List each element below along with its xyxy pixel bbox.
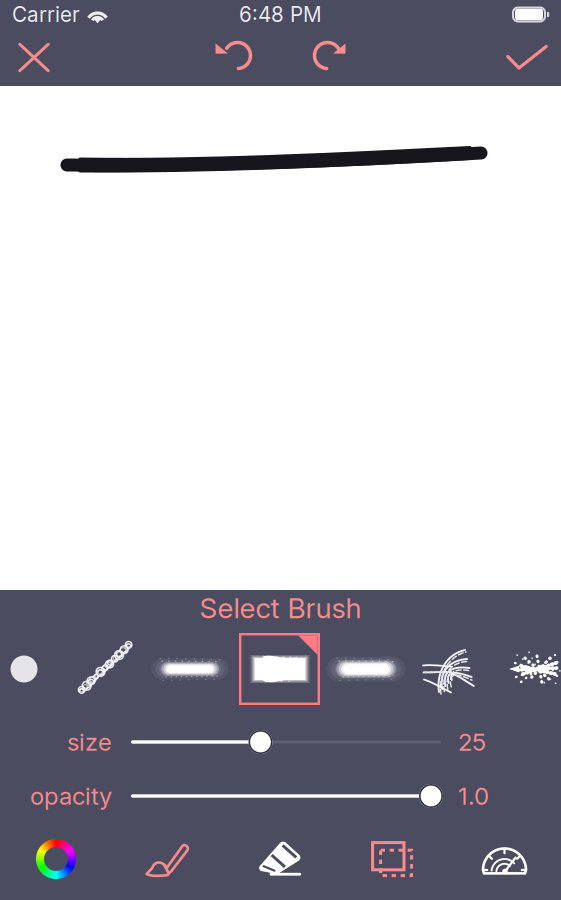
staticText: 1.0 — [458, 781, 489, 810]
staticText: 25 — [458, 727, 486, 756]
button[interactable]: Select — [336, 828, 448, 890]
button[interactable]: Redo — [292, 29, 358, 86]
button[interactable]: Colour picker — [0, 828, 112, 890]
staticText: 6:48 PM — [239, 2, 322, 27]
staticText: Carrier — [12, 2, 80, 27]
button[interactable]: Airbrush — [322, 627, 410, 711]
button[interactable]: Close — [0, 29, 68, 86]
button[interactable]: Undo — [202, 29, 268, 86]
button[interactable]: Brush — [112, 828, 224, 890]
button[interactable]: Round brush — [0, 627, 63, 711]
button[interactable]: Chain brush — [66, 627, 144, 711]
staticText: size — [67, 727, 112, 756]
button[interactable]: Spray brush — [146, 627, 234, 711]
button[interactable]: Done — [493, 29, 561, 86]
button[interactable]: Rake brush — [421, 627, 479, 711]
button[interactable]: Eraser — [224, 828, 336, 890]
button[interactable]: Splatter brush — [508, 627, 561, 711]
staticText: opacity — [30, 781, 112, 810]
button[interactable]: Settings — [448, 828, 561, 890]
button[interactable]: Marker brush, selected — [237, 627, 321, 711]
staticText: Select Brush — [199, 591, 361, 625]
